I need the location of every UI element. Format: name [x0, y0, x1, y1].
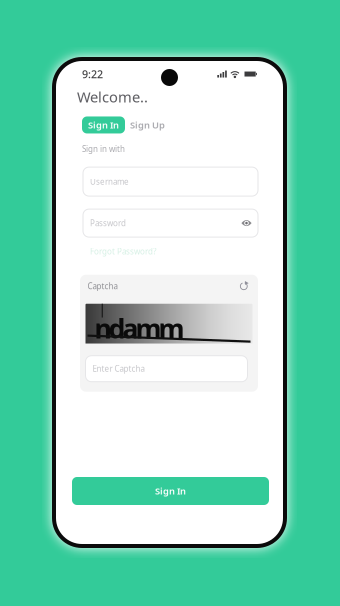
staticText: Enter Captcha — [92, 363, 144, 374]
staticText: 9:22 — [82, 67, 103, 81]
staticText: Captcha — [87, 281, 117, 291]
staticText: Password — [90, 218, 126, 228]
staticText: Forgot Password? — [90, 246, 156, 257]
button[interactable]: Sign In — [82, 116, 125, 133]
button[interactable]: Sign In — [72, 477, 269, 505]
staticText: Username — [90, 176, 129, 187]
staticText: Welcome.. — [77, 87, 148, 106]
button[interactable]: Refresh captcha — [238, 281, 249, 292]
button[interactable]: Forgot Password? — [56, 237, 162, 259]
staticText: Sign In — [155, 485, 186, 497]
staticText: Sign in with — [82, 143, 125, 154]
staticText: ndamm — [94, 310, 184, 346]
staticText: Sign In — [88, 119, 119, 131]
staticText: Sign Up — [130, 119, 165, 131]
button[interactable]: Sign Up — [130, 116, 165, 133]
